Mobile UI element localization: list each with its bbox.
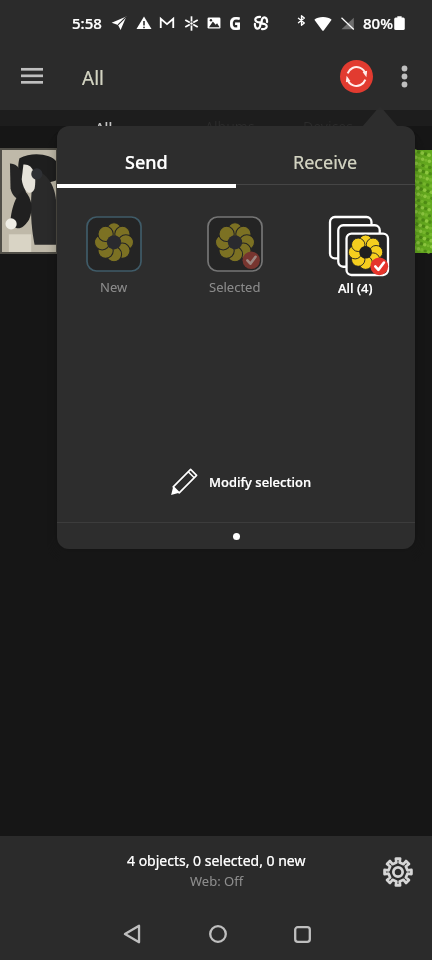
button[interactable]: Selected [195, 216, 275, 296]
staticText: All (4) [338, 279, 373, 297]
staticText: 5:58 [72, 13, 102, 33]
staticText: All [82, 65, 104, 91]
staticText: Send [125, 150, 168, 175]
button[interactable]: Sync [330, 52, 382, 104]
staticText: Albums [205, 117, 255, 126]
button[interactable]: Receive [236, 126, 415, 184]
button[interactable]: New [74, 216, 154, 296]
button[interactable]: Recent apps [277, 908, 327, 960]
staticText: 80% [363, 13, 393, 33]
staticText: G [229, 12, 242, 35]
staticText: Selected [209, 278, 261, 296]
staticText: 4 objects, 0 selected, 0 new [127, 851, 306, 870]
button[interactable]: Open navigation drawer [8, 54, 56, 102]
button[interactable]: Send [57, 126, 236, 184]
button[interactable]: Home [193, 908, 243, 960]
staticText: All [95, 117, 113, 126]
button[interactable]: More options [382, 56, 426, 100]
button[interactable]: Settings [374, 848, 422, 896]
staticText: Receive [293, 150, 358, 175]
staticText: Devices [303, 117, 353, 126]
staticText: Modify selection [209, 473, 312, 491]
button[interactable]: Modify selection [157, 459, 324, 505]
button[interactable]: Back [107, 908, 157, 960]
staticText: Web: Off [190, 872, 244, 890]
staticText: New [100, 278, 128, 296]
button[interactable]: All (4) [315, 216, 395, 297]
